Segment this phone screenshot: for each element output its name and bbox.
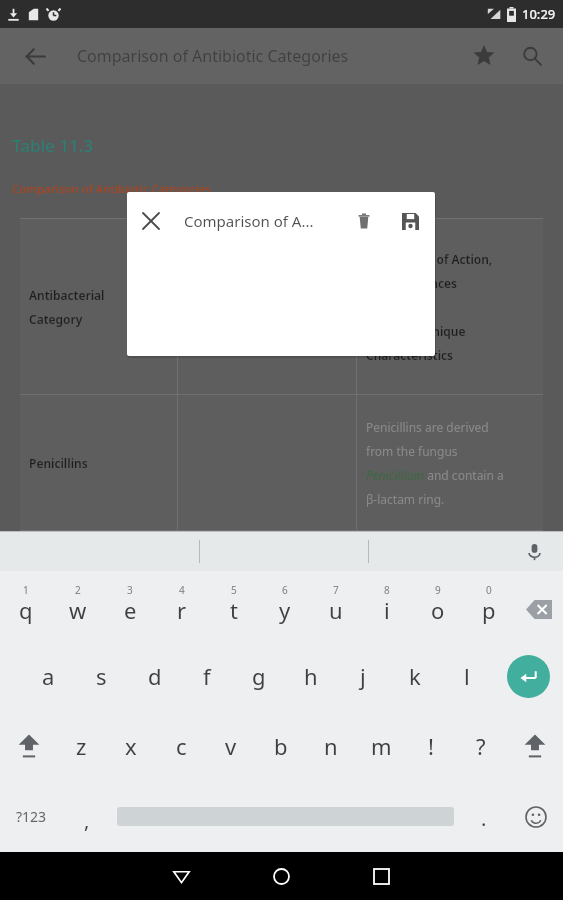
staticText: 9: [435, 583, 441, 597]
staticText: Comparison of A...: [184, 211, 341, 231]
staticText: o: [431, 595, 445, 625]
button[interactable]: ?123: [0, 781, 62, 852]
staticText: z: [76, 731, 87, 761]
button[interactable]: g: [233, 641, 285, 711]
button[interactable]: x: [106, 711, 156, 781]
button[interactable]: Back: [11, 32, 59, 80]
button[interactable]: Space: [112, 781, 459, 852]
button[interactable]: Save: [387, 198, 433, 244]
staticText: y: [279, 595, 291, 625]
button[interactable]: z: [57, 711, 106, 781]
button[interactable]: !: [406, 711, 456, 781]
button[interactable]: .: [459, 781, 509, 852]
button[interactable]: a: [22, 641, 75, 711]
staticText: Comparison of Antibiotic Categories: [77, 45, 349, 67]
staticText: f: [203, 661, 211, 691]
staticText: .: [481, 805, 487, 832]
staticText: Mechanism of Action, Key Differences Bet…: [366, 251, 493, 363]
staticText: 6: [282, 583, 288, 597]
staticText: b: [274, 731, 288, 761]
button[interactable]: 8: [361, 571, 412, 641]
staticText: 2: [75, 583, 81, 597]
staticText: i: [384, 595, 390, 625]
button[interactable]: n: [306, 711, 356, 781]
button[interactable]: Delete: [341, 198, 387, 244]
staticText: h: [304, 661, 318, 691]
button[interactable]: Shift: [0, 711, 57, 781]
staticText: Antibacterial Category: [29, 287, 105, 327]
staticText: 10:29: [522, 5, 556, 23]
staticText: ,: [84, 807, 90, 834]
staticText: l: [464, 661, 470, 691]
button[interactable]: Emoji: [509, 781, 563, 852]
staticText: 5: [231, 583, 237, 597]
button[interactable]: 9: [412, 571, 463, 641]
staticText: 4: [179, 583, 185, 597]
staticText: Penicillins are derived from the fungus …: [366, 419, 504, 507]
staticText: x: [125, 731, 137, 761]
button[interactable]: c: [156, 711, 206, 781]
staticText: 0: [486, 583, 492, 597]
button[interactable]: 4: [156, 571, 208, 641]
staticText: e: [124, 595, 137, 625]
staticText: a: [42, 661, 55, 691]
button[interactable]: l: [441, 641, 493, 711]
button[interactable]: Shift: [506, 711, 563, 781]
button[interactable]: 6: [259, 571, 310, 641]
button[interactable]: Voice input: [517, 535, 551, 569]
staticText: w: [69, 595, 87, 625]
button[interactable]: b: [256, 711, 306, 781]
button[interactable]: Search: [508, 32, 556, 80]
staticText: Penicillins: [29, 455, 88, 471]
staticText: v: [225, 731, 237, 761]
staticText: r: [177, 595, 187, 625]
staticText: 8: [384, 583, 390, 597]
button[interactable]: h: [285, 641, 337, 711]
staticText: n: [324, 731, 338, 761]
button[interactable]: 2: [52, 571, 104, 641]
button[interactable]: 7: [310, 571, 361, 641]
button[interactable]: 5: [208, 571, 259, 641]
staticText: ?: [476, 731, 486, 761]
button[interactable]: j: [337, 641, 389, 711]
staticText: u: [329, 595, 343, 625]
staticText: 3: [127, 583, 133, 597]
button[interactable]: 1: [0, 571, 52, 641]
button[interactable]: v: [206, 711, 256, 781]
button[interactable]: 0: [463, 571, 514, 641]
staticText: ?123: [16, 807, 47, 826]
staticText: c: [176, 731, 187, 761]
staticText: Comparison of Antibiotic Categories: [12, 181, 211, 197]
button[interactable]: k: [389, 641, 441, 711]
button[interactable]: Bookmark: [460, 32, 508, 80]
button[interactable]: Home: [231, 852, 331, 900]
staticText: d: [148, 661, 162, 691]
staticText: Table 11.3: [12, 134, 94, 157]
button[interactable]: f: [181, 641, 233, 711]
button[interactable]: Back: [131, 852, 231, 900]
staticText: !: [428, 731, 434, 761]
button[interactable]: s: [75, 641, 128, 711]
staticText: j: [360, 661, 366, 691]
button[interactable]: Backspace: [514, 571, 563, 641]
staticText: g: [252, 661, 266, 691]
button[interactable]: m: [356, 711, 406, 781]
staticText: p: [482, 595, 496, 625]
staticText: s: [96, 661, 107, 691]
staticText: t: [230, 595, 238, 625]
button[interactable]: ,: [62, 781, 112, 852]
staticText: m: [371, 731, 392, 761]
staticText: q: [19, 595, 33, 625]
staticText: 7: [333, 583, 339, 597]
button[interactable]: Recent apps: [331, 852, 431, 900]
button[interactable]: d: [128, 641, 181, 711]
button[interactable]: 3: [104, 571, 156, 641]
button[interactable]: Enter: [493, 641, 563, 711]
staticText: 1: [23, 583, 29, 597]
button[interactable]: ?: [456, 711, 506, 781]
button[interactable]: Close: [127, 197, 175, 245]
staticText: k: [409, 661, 421, 691]
